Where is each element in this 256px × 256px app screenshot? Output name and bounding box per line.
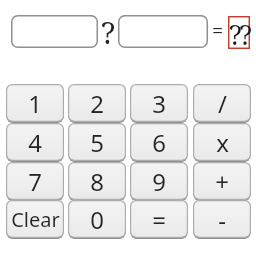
button[interactable]: x <box>193 123 251 162</box>
staticText: x <box>216 126 229 159</box>
staticText: 4 <box>28 126 42 159</box>
button[interactable]: 5 <box>68 123 126 162</box>
staticText: 2 <box>90 87 104 120</box>
button[interactable]: / <box>193 84 251 123</box>
staticText: Clear <box>11 206 60 233</box>
staticText: 5 <box>90 126 104 159</box>
button[interactable] <box>11 15 98 48</box>
button[interactable]: 6 <box>130 123 188 162</box>
button[interactable]: 8 <box>68 162 126 201</box>
button[interactable]: 0 <box>68 200 126 239</box>
staticText: 0 <box>90 203 104 236</box>
button[interactable] <box>118 15 208 48</box>
staticText: 6 <box>152 126 166 159</box>
staticText: = <box>212 17 224 44</box>
button[interactable]: ?? <box>228 16 250 49</box>
staticText: / <box>218 87 227 120</box>
button[interactable]: - <box>193 200 251 239</box>
button[interactable]: 3 <box>130 84 188 123</box>
staticText: 1 <box>28 87 42 120</box>
staticText: 7 <box>28 165 42 198</box>
staticText: ?? <box>229 16 250 49</box>
button[interactable]: + <box>193 162 251 201</box>
button[interactable]: = <box>130 200 188 239</box>
staticText: - <box>218 203 226 236</box>
button[interactable]: 2 <box>68 84 126 123</box>
staticText: + <box>215 165 229 198</box>
button[interactable]: Clear <box>6 200 64 239</box>
staticText: 3 <box>152 87 166 120</box>
button[interactable]: 9 <box>130 162 188 201</box>
staticText: 8 <box>90 165 104 198</box>
button[interactable]: 1 <box>6 84 64 123</box>
staticText: = <box>152 203 166 236</box>
staticText: 9 <box>152 165 166 198</box>
staticText: ? <box>101 12 116 53</box>
button[interactable]: 7 <box>6 162 64 201</box>
button[interactable]: 4 <box>6 123 64 162</box>
